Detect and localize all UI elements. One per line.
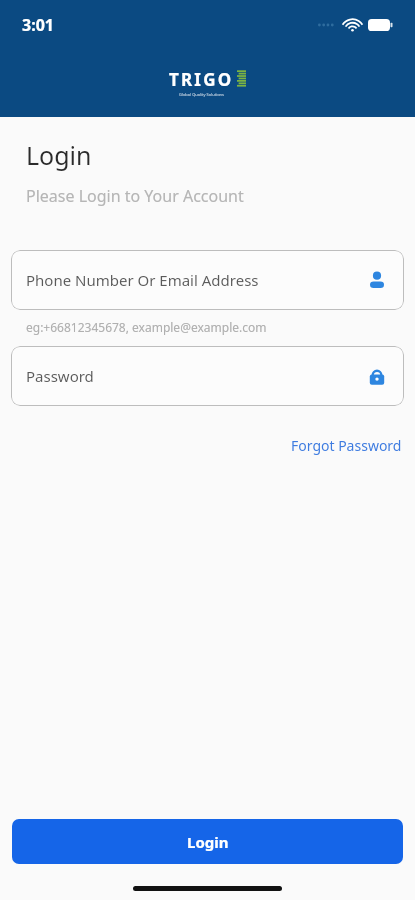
staticText: Forgot Password bbox=[291, 436, 402, 455]
other: Account bbox=[365, 268, 389, 292]
other: Show password bbox=[365, 364, 389, 388]
staticText: Phone Number Or Email Address bbox=[26, 270, 259, 290]
staticText: Password bbox=[26, 366, 94, 386]
staticText: TRIGO bbox=[169, 68, 234, 91]
staticText: Please Login to Your Account bbox=[26, 185, 244, 207]
button[interactable]: Forgot Password bbox=[289, 432, 404, 459]
staticText: eg:+66812345678, example@example.com bbox=[26, 319, 267, 335]
button[interactable]: Password bbox=[11, 346, 404, 406]
staticText: Global Quality Solutions bbox=[179, 92, 224, 97]
button[interactable]: Phone Number Or Email Address bbox=[11, 250, 404, 310]
staticText: Login bbox=[26, 138, 92, 172]
button[interactable]: Login bbox=[12, 819, 403, 864]
staticText: Login bbox=[187, 832, 229, 852]
staticText: 3:01 bbox=[22, 14, 54, 36]
